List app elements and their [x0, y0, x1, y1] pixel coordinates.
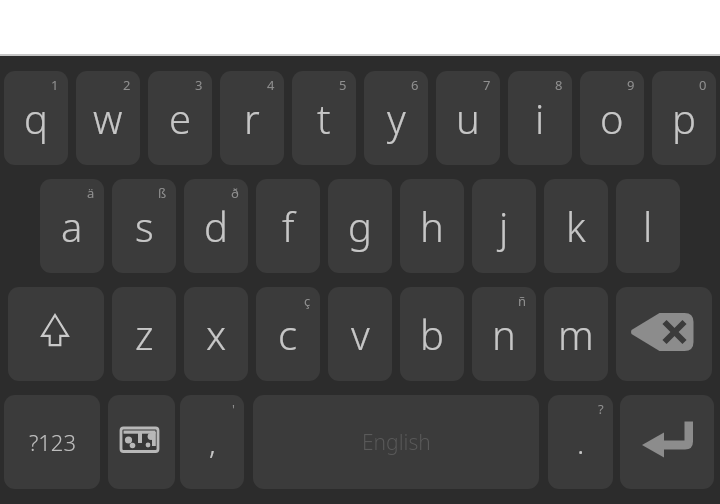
staticText: 8 [555, 76, 563, 94]
staticText: l [643, 199, 653, 253]
staticText: 4 [267, 76, 275, 94]
staticText: i [535, 91, 545, 145]
staticText: 6 [411, 76, 419, 94]
button[interactable] [8, 287, 104, 381]
staticText: j [499, 199, 509, 253]
staticText: z [135, 307, 154, 361]
button[interactable]: c [256, 287, 320, 381]
staticText: f [282, 199, 295, 253]
button[interactable]: n [472, 287, 536, 381]
button[interactable] [620, 395, 714, 489]
staticText: s [135, 199, 154, 253]
button[interactable]: v [328, 287, 392, 381]
staticText: ç [304, 292, 311, 310]
button[interactable]: z [112, 287, 176, 381]
staticText: 0 [699, 76, 707, 94]
staticText: p [672, 91, 696, 145]
button[interactable]: , [180, 395, 244, 489]
staticText: ' [232, 400, 235, 418]
button[interactable]: g [328, 179, 392, 273]
button[interactable]: h [400, 179, 464, 273]
staticText: ? [598, 400, 604, 418]
staticText: k [566, 199, 586, 253]
staticText: . [577, 422, 585, 463]
staticText: h [420, 199, 444, 253]
button[interactable]: l [616, 179, 680, 273]
button[interactable]: u [436, 71, 500, 165]
staticText: m [558, 307, 594, 361]
button[interactable]: o [580, 71, 644, 165]
staticText: 7 [483, 76, 491, 94]
button[interactable]: i [508, 71, 572, 165]
staticText: a [61, 199, 83, 253]
button[interactable]: y [364, 71, 428, 165]
button[interactable]: b [400, 287, 464, 381]
staticText: 5 [339, 76, 347, 94]
staticText: ß [158, 184, 167, 202]
staticText: r [244, 91, 260, 145]
button[interactable]: x [184, 287, 248, 381]
button[interactable]: r [220, 71, 284, 165]
staticText: o [600, 91, 624, 145]
staticText: t [317, 91, 331, 145]
staticText: , [209, 422, 216, 463]
button[interactable]: w [76, 71, 140, 165]
staticText: y [387, 91, 406, 145]
staticText: w [93, 91, 123, 145]
button[interactable]: s [112, 179, 176, 273]
staticText: u [456, 91, 480, 145]
staticText: 2 [123, 76, 131, 94]
staticText: ä [87, 184, 95, 202]
staticText: ñ [518, 292, 527, 310]
button[interactable]: t [292, 71, 356, 165]
button[interactable]: f [256, 179, 320, 273]
staticText: g [348, 199, 372, 253]
button[interactable] [108, 395, 175, 489]
staticText: e [169, 91, 192, 145]
staticText: 9 [627, 76, 635, 94]
button[interactable] [616, 287, 712, 381]
button[interactable]: . [548, 395, 613, 489]
staticText: ð [231, 184, 239, 202]
button[interactable]: e [148, 71, 212, 165]
button[interactable]: j [472, 179, 536, 273]
staticText: q [24, 91, 48, 145]
button[interactable]: m [544, 287, 608, 381]
staticText: c [278, 307, 298, 361]
button[interactable]: q [4, 71, 68, 165]
staticText: n [492, 307, 516, 361]
button[interactable]: p [652, 71, 716, 165]
staticText: x [206, 307, 227, 361]
staticText: v [351, 307, 370, 361]
button[interactable]: d [184, 179, 248, 273]
button[interactable]: k [544, 179, 608, 273]
staticText: d [204, 199, 228, 253]
staticText: 1 [51, 76, 59, 94]
staticText: 3 [195, 76, 203, 94]
button[interactable]: a [40, 179, 104, 273]
staticText: ?123 [29, 427, 76, 457]
staticText: English [362, 428, 431, 457]
button[interactable]: ?123 [4, 395, 100, 489]
staticText: b [420, 307, 444, 361]
